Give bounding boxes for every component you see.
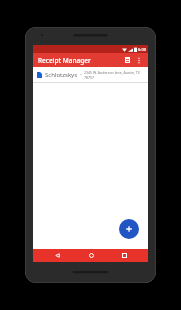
button[interactable]: Recents (114, 249, 134, 262)
button[interactable]: Receipts (121, 54, 133, 66)
button[interactable]: More options (133, 54, 145, 66)
button[interactable]: Back (47, 249, 67, 262)
button[interactable]: Home (81, 249, 101, 262)
staticText: 2345 W. Anderson lane, Austin, TX 78757 (84, 70, 144, 80)
staticText: Schlotzskys (45, 71, 78, 79)
button[interactable]: Add receipt (119, 219, 139, 239)
button[interactable]: Schlotzskys (33, 67, 148, 82)
staticText: 6:00 (138, 47, 146, 52)
staticText: - (80, 71, 82, 78)
staticText: Receipt Manager (38, 56, 91, 65)
